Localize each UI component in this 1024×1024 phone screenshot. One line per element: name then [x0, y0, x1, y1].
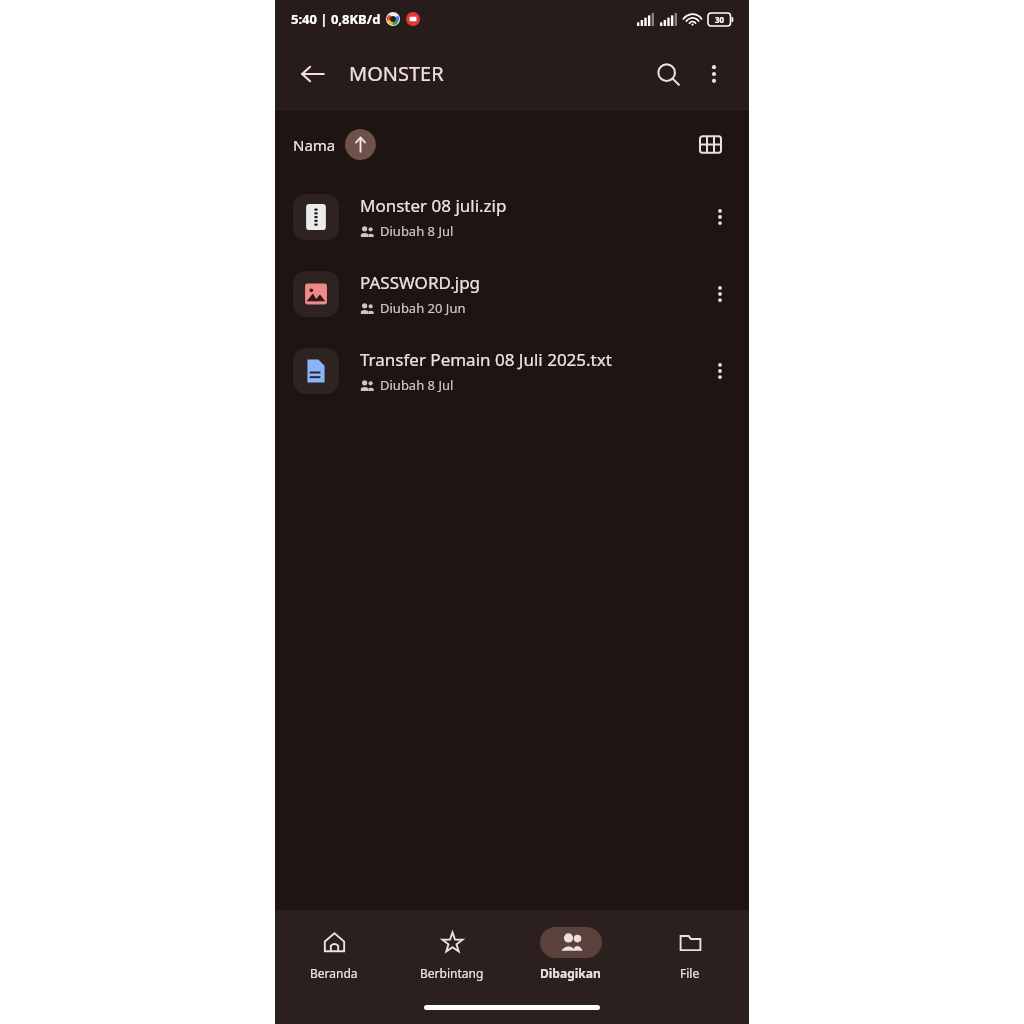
button[interactable]: Beranda — [275, 910, 393, 998]
button[interactable]: More options — [691, 51, 737, 97]
staticText: Berbintang — [420, 965, 484, 981]
button[interactable]: Dibagikan — [511, 910, 630, 998]
staticText: MONSTER — [349, 60, 444, 87]
button[interactable]: Search — [645, 51, 691, 97]
staticText: 5:40 | 0,8KB/d — [291, 10, 381, 28]
button[interactable]: More options — [697, 348, 743, 394]
button[interactable]: Berbintang — [393, 910, 511, 998]
staticText: PASSWORD.jpg — [360, 271, 481, 294]
staticText: Dibagikan — [540, 965, 601, 981]
button[interactable]: Monster 08 juli.zip — [275, 178, 749, 255]
button[interactable]: Grid view — [689, 123, 731, 165]
staticText: Diubah 8 Jul — [380, 376, 454, 394]
button[interactable]: Nama — [293, 129, 376, 160]
staticText: Nama — [293, 135, 336, 155]
staticText: Diubah 8 Jul — [380, 222, 454, 240]
staticText: Beranda — [310, 965, 358, 981]
staticText: Diubah 20 Jun — [380, 299, 466, 317]
button[interactable]: PASSWORD.jpg — [275, 255, 749, 332]
staticText: Transfer Pemain 08 Juli 2025.txt — [360, 348, 612, 371]
button[interactable]: More options — [697, 194, 743, 240]
button[interactable]: More options — [697, 271, 743, 317]
button[interactable]: Transfer Pemain 08 Juli 2025.txt — [275, 332, 749, 409]
staticText: Monster 08 juli.zip — [360, 194, 507, 217]
button[interactable]: File — [630, 910, 749, 998]
staticText: 30 — [715, 14, 725, 25]
button[interactable]: Back — [291, 52, 335, 96]
staticText: File — [680, 965, 700, 981]
